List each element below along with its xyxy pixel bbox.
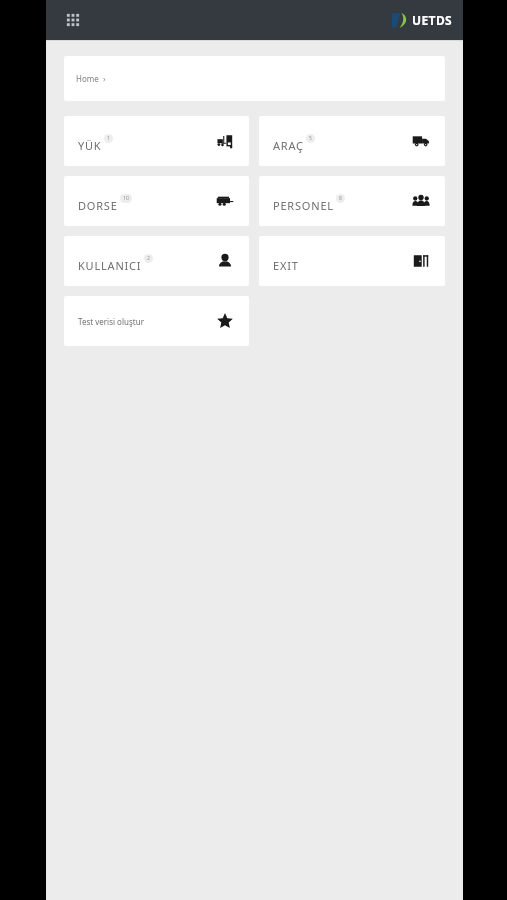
button[interactable]: Menu	[58, 5, 88, 35]
staticText: 10	[123, 195, 129, 202]
staticText: PERSONEL	[273, 198, 334, 213]
button[interactable]: UETDS	[391, 11, 453, 29]
staticText: ARAÇ	[273, 138, 304, 153]
staticText: DORSE	[78, 198, 118, 213]
button[interactable]: PERSONEL	[259, 176, 445, 226]
button[interactable]: KULLANICI	[64, 236, 249, 286]
staticText: EXIT	[273, 258, 299, 273]
button[interactable]: Home	[64, 56, 445, 101]
staticText: YÜK	[78, 138, 102, 153]
button[interactable]: YÜK	[64, 116, 249, 166]
staticText: KULLANICI	[78, 258, 142, 273]
button[interactable]: Test verisi oluştur	[64, 296, 249, 346]
staticText: UETDS	[412, 12, 453, 28]
staticText: 8	[339, 195, 342, 202]
staticText: ›	[103, 73, 106, 84]
staticText: Home	[76, 73, 99, 84]
staticText: 5	[309, 135, 312, 142]
button[interactable]: EXIT	[259, 236, 445, 286]
staticText: Test verisi oluştur	[78, 316, 144, 327]
staticText: 2	[147, 255, 150, 262]
staticText: 1	[107, 135, 110, 142]
button[interactable]: DORSE	[64, 176, 249, 226]
button[interactable]: ARAÇ	[259, 116, 445, 166]
